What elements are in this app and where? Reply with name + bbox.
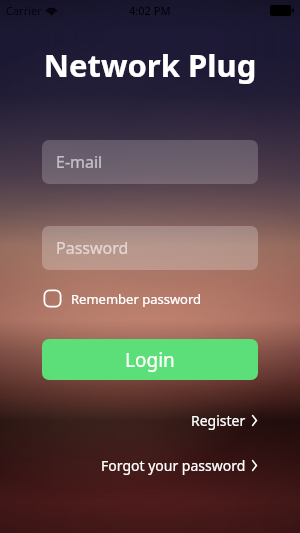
staticText: Password xyxy=(56,237,129,259)
staticText: Register xyxy=(191,411,246,430)
button[interactable]: E-mail xyxy=(42,140,258,184)
staticText: Forgot your password xyxy=(101,456,246,475)
staticText: E-mail xyxy=(56,151,103,173)
staticText: Network Plug xyxy=(0,44,300,86)
button[interactable]: Register xyxy=(187,408,262,433)
staticText: Carrier xyxy=(6,3,42,18)
staticText: Login xyxy=(125,347,175,373)
button[interactable]: Remember password xyxy=(42,286,203,311)
button[interactable]: Password xyxy=(42,226,258,270)
staticText: 4:02 PM xyxy=(129,3,171,18)
button[interactable]: Forgot your password xyxy=(97,453,262,478)
button[interactable]: Login xyxy=(42,339,258,380)
staticText: Remember password xyxy=(71,290,202,308)
